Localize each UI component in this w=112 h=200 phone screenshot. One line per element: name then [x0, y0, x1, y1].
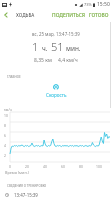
staticText: 0	[9, 164, 11, 169]
staticText: 100	[96, 164, 102, 169]
staticText: км/ч	[4, 107, 12, 112]
staticText: 6	[4, 133, 6, 138]
staticText: 80	[79, 164, 83, 169]
staticText: 60	[61, 164, 65, 169]
staticText: 1	[32, 39, 39, 54]
button[interactable]: ГОТОВО	[87, 9, 111, 21]
staticText: 2	[4, 153, 6, 158]
button[interactable]: Back	[0, 9, 12, 21]
staticText: ГЛАВНОЕ	[7, 75, 21, 79]
staticText: 10	[4, 113, 8, 118]
staticText: Скорость	[46, 92, 67, 98]
staticText: 8,35 км	[34, 57, 52, 64]
staticText: 73%	[84, 2, 92, 7]
staticText: Время (мин.)	[5, 170, 29, 175]
staticText: 4	[4, 143, 6, 148]
button[interactable]: Скорость	[0, 84, 112, 98]
staticText: 40	[43, 164, 47, 169]
staticText: ГОТОВО	[89, 12, 109, 18]
button[interactable]: ПОДЕЛИТЬСЯ	[50, 9, 87, 21]
button[interactable]: 13:47-15:39	[0, 190, 112, 200]
staticText: СВЕДЕНИЯ О ТРЕНИРОВКЕ	[7, 184, 47, 188]
staticText: вс, 25 мар, 13:47-15:39	[32, 31, 80, 37]
staticText: 13:47-15:39	[14, 192, 38, 198]
staticText: 20	[25, 164, 29, 169]
staticText: ПОДЕЛИТЬСЯ	[52, 12, 85, 18]
staticText: ч.	[42, 44, 48, 53]
staticText: 8	[4, 123, 6, 128]
staticText: ХОДЬБА	[16, 12, 35, 18]
staticText: мин.	[66, 44, 81, 53]
staticText: 4,4 км/ч	[58, 57, 78, 64]
staticText: 51	[51, 39, 64, 54]
staticText: 15:50	[97, 1, 110, 8]
